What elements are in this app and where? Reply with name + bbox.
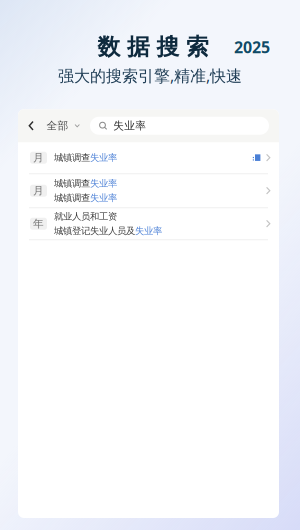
staticText: 全部 bbox=[46, 119, 68, 132]
staticText: 城镇调查 bbox=[54, 178, 90, 189]
staticText: 2025 bbox=[233, 36, 269, 58]
staticText: 2025 bbox=[234, 37, 270, 59]
staticText: 2025 bbox=[235, 36, 271, 58]
staticText: 失业率 bbox=[135, 225, 162, 237]
staticText: 失业率 bbox=[113, 119, 146, 132]
button[interactable]: 年 bbox=[18, 208, 279, 239]
staticText: 城镇调查 bbox=[54, 192, 90, 204]
button[interactable]: 月 bbox=[18, 142, 279, 173]
staticText: 强大的搜索引擎,精准,快速 bbox=[58, 65, 242, 86]
staticText: 2025 bbox=[233, 36, 269, 57]
button[interactable]: 月 bbox=[18, 174, 279, 207]
staticText: 城镇调查 bbox=[54, 152, 90, 163]
staticText: 2025 bbox=[234, 35, 270, 57]
staticText: 月 bbox=[33, 151, 44, 164]
staticText: 2025 bbox=[233, 37, 269, 58]
staticText: 城镇登记失业人员及 bbox=[54, 225, 135, 237]
staticText: 失业率 bbox=[90, 178, 117, 189]
staticText: 失业率 bbox=[90, 152, 117, 163]
staticText: 就业人员和工资 bbox=[54, 211, 117, 222]
staticText: 2025 bbox=[234, 36, 270, 58]
staticText: 失业率 bbox=[90, 192, 117, 204]
button[interactable]: 全部 bbox=[46, 109, 80, 142]
button[interactable]: 失业率 bbox=[90, 117, 269, 135]
staticText: 月 bbox=[33, 184, 44, 197]
staticText: 2025 bbox=[235, 37, 271, 58]
staticText: 2025 bbox=[235, 36, 271, 57]
staticText: 数据搜索 bbox=[97, 33, 209, 61]
button[interactable]: 返回 bbox=[18, 109, 46, 142]
staticText: 年 bbox=[33, 217, 44, 230]
